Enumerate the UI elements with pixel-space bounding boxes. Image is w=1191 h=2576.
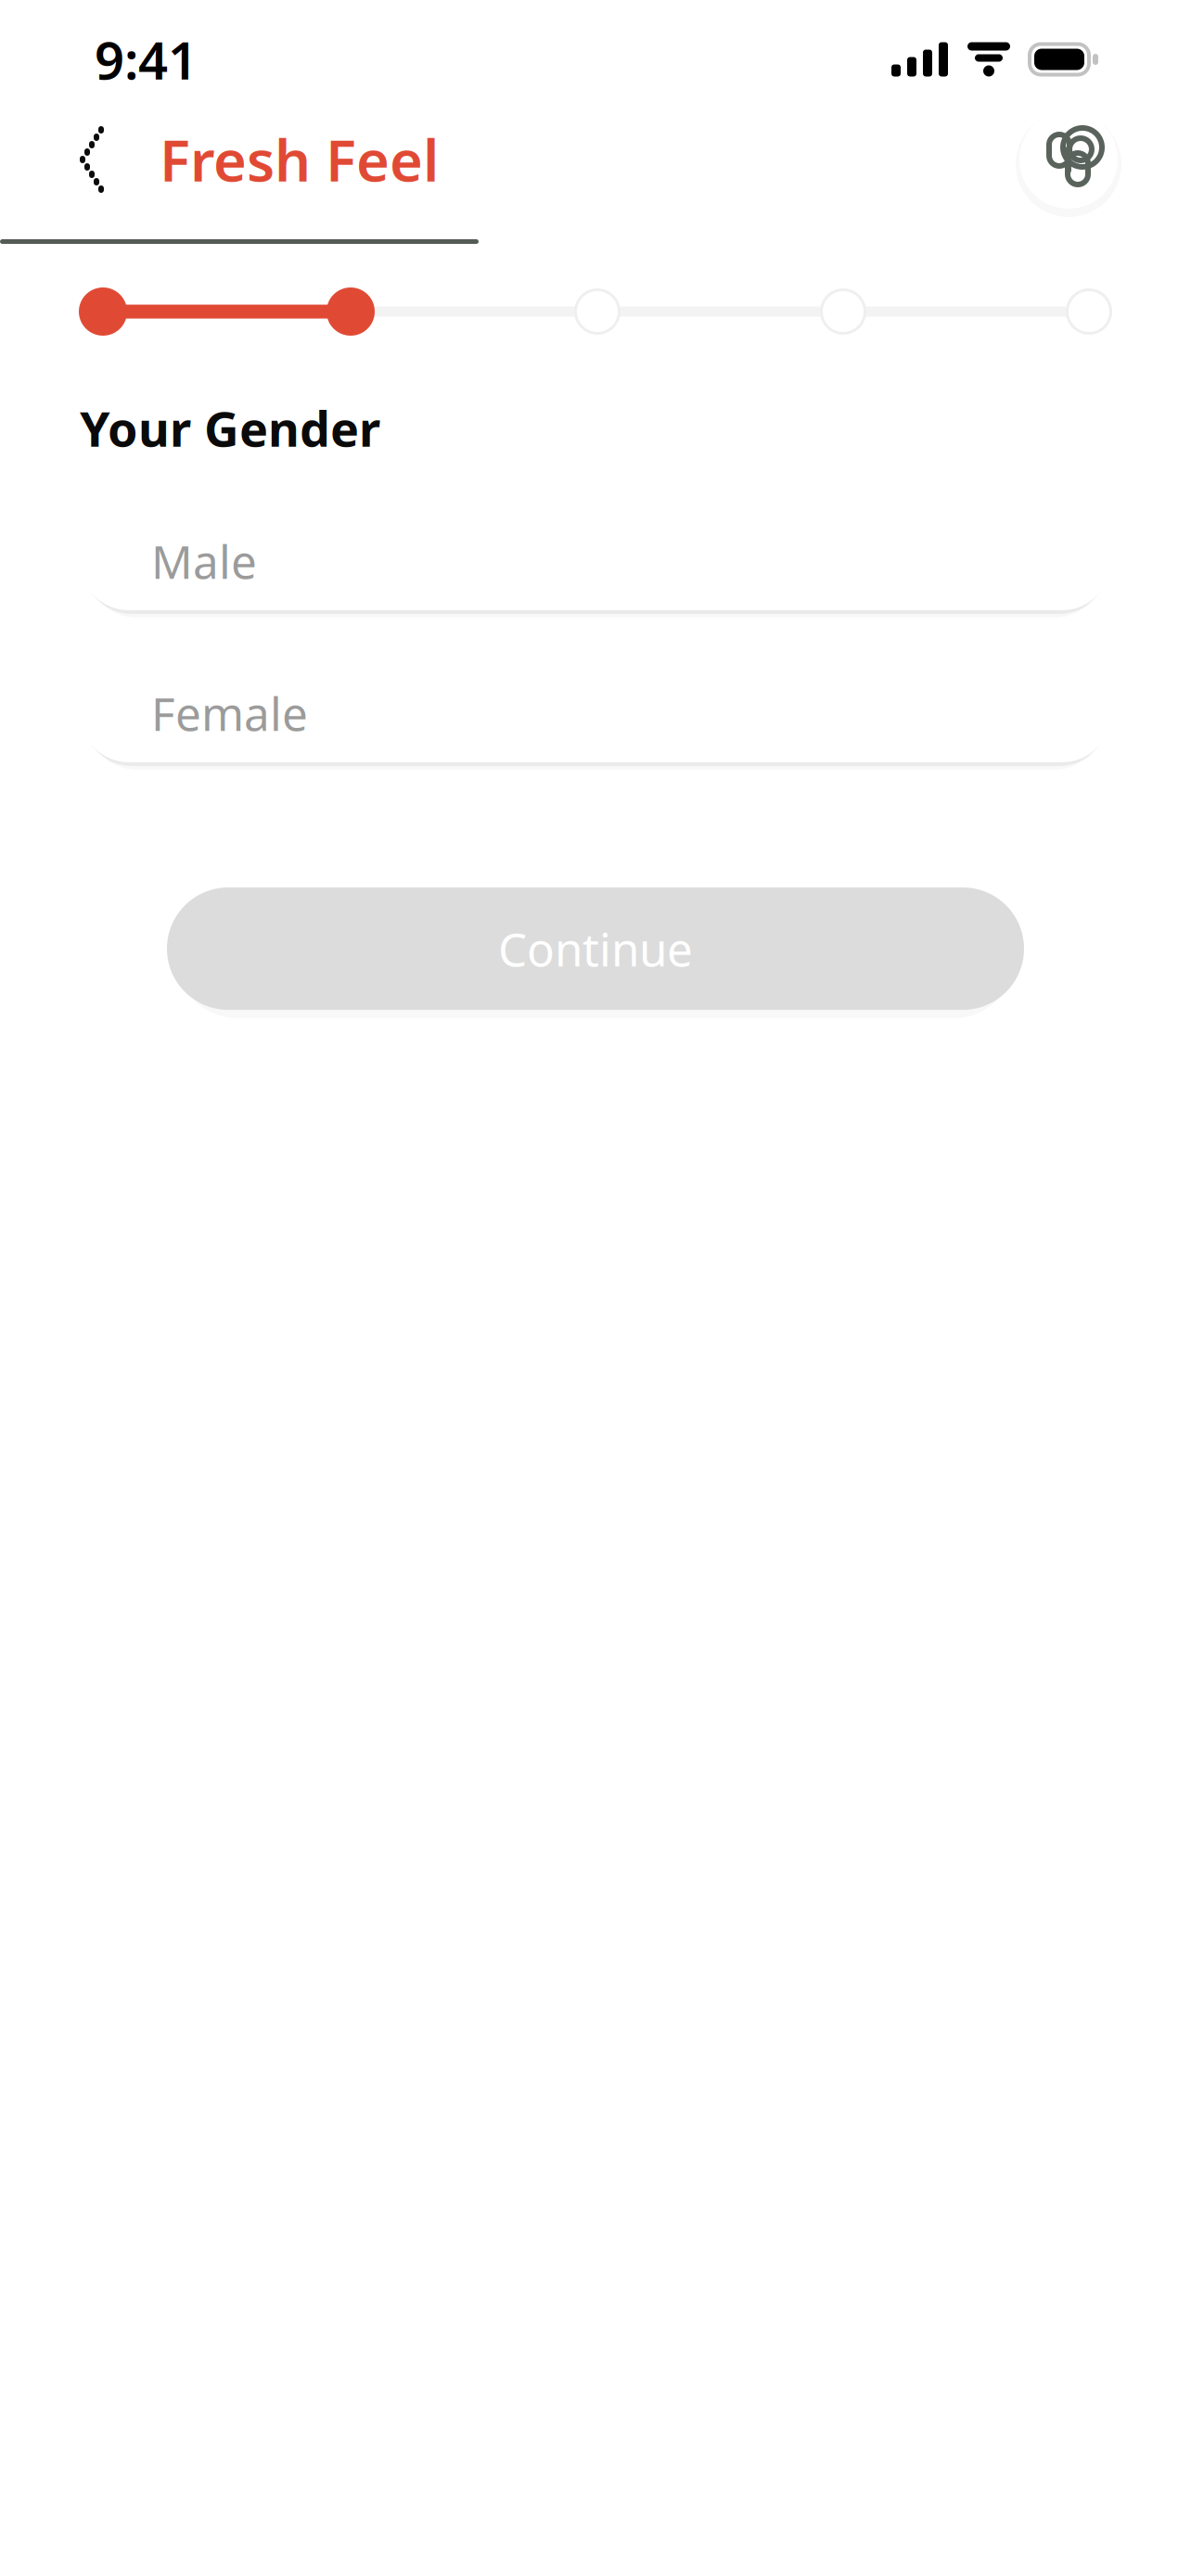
button[interactable]: Continue — [0, 877, 1191, 1020]
staticText: Your Gender — [80, 396, 380, 460]
staticText: Male — [151, 531, 257, 591]
staticText: Continue — [498, 918, 693, 979]
staticText: Fresh Feel — [160, 122, 439, 197]
button[interactable]: Male — [0, 501, 1191, 621]
staticText: 9:41 — [95, 25, 198, 94]
button[interactable]: Female — [0, 653, 1191, 773]
button[interactable]: Back — [43, 113, 135, 206]
staticText: Female — [151, 683, 308, 743]
button[interactable]: Call — [1011, 102, 1126, 217]
